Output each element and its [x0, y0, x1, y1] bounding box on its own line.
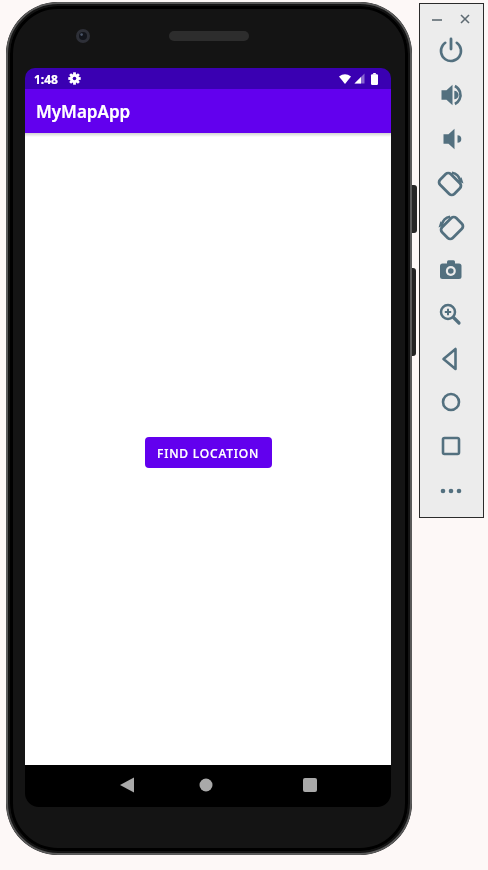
button[interactable]: [433, 384, 469, 420]
button[interactable]: [433, 297, 469, 333]
button[interactable]: [433, 33, 469, 69]
button[interactable]: [433, 341, 469, 377]
button[interactable]: [433, 165, 469, 201]
button[interactable]: [296, 771, 324, 799]
button[interactable]: [433, 473, 469, 509]
button[interactable]: FIND LOCATION: [145, 437, 272, 468]
staticText: MyMapApp: [36, 100, 131, 123]
button[interactable]: [433, 121, 469, 157]
button[interactable]: [433, 77, 469, 113]
button[interactable]: [429, 11, 445, 27]
button[interactable]: [433, 428, 469, 464]
button[interactable]: [113, 771, 141, 799]
button[interactable]: [433, 209, 469, 245]
staticText: 1:48: [34, 71, 58, 87]
staticText: FIND LOCATION: [157, 445, 260, 461]
button[interactable]: [457, 11, 473, 27]
button[interactable]: [433, 253, 469, 289]
button[interactable]: [192, 771, 220, 799]
